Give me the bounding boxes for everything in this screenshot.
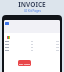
button[interactable] (5, 22, 9, 25)
button[interactable] (5, 41, 59, 44)
staticText: UI Kit Pages (24, 9, 41, 13)
staticText: PAY NOW (19, 62, 31, 65)
button[interactable] (5, 44, 59, 47)
button[interactable] (5, 47, 59, 50)
button[interactable]: PAY NOW (18, 60, 31, 66)
button[interactable] (5, 50, 59, 53)
staticText: INVOICE (18, 0, 46, 9)
